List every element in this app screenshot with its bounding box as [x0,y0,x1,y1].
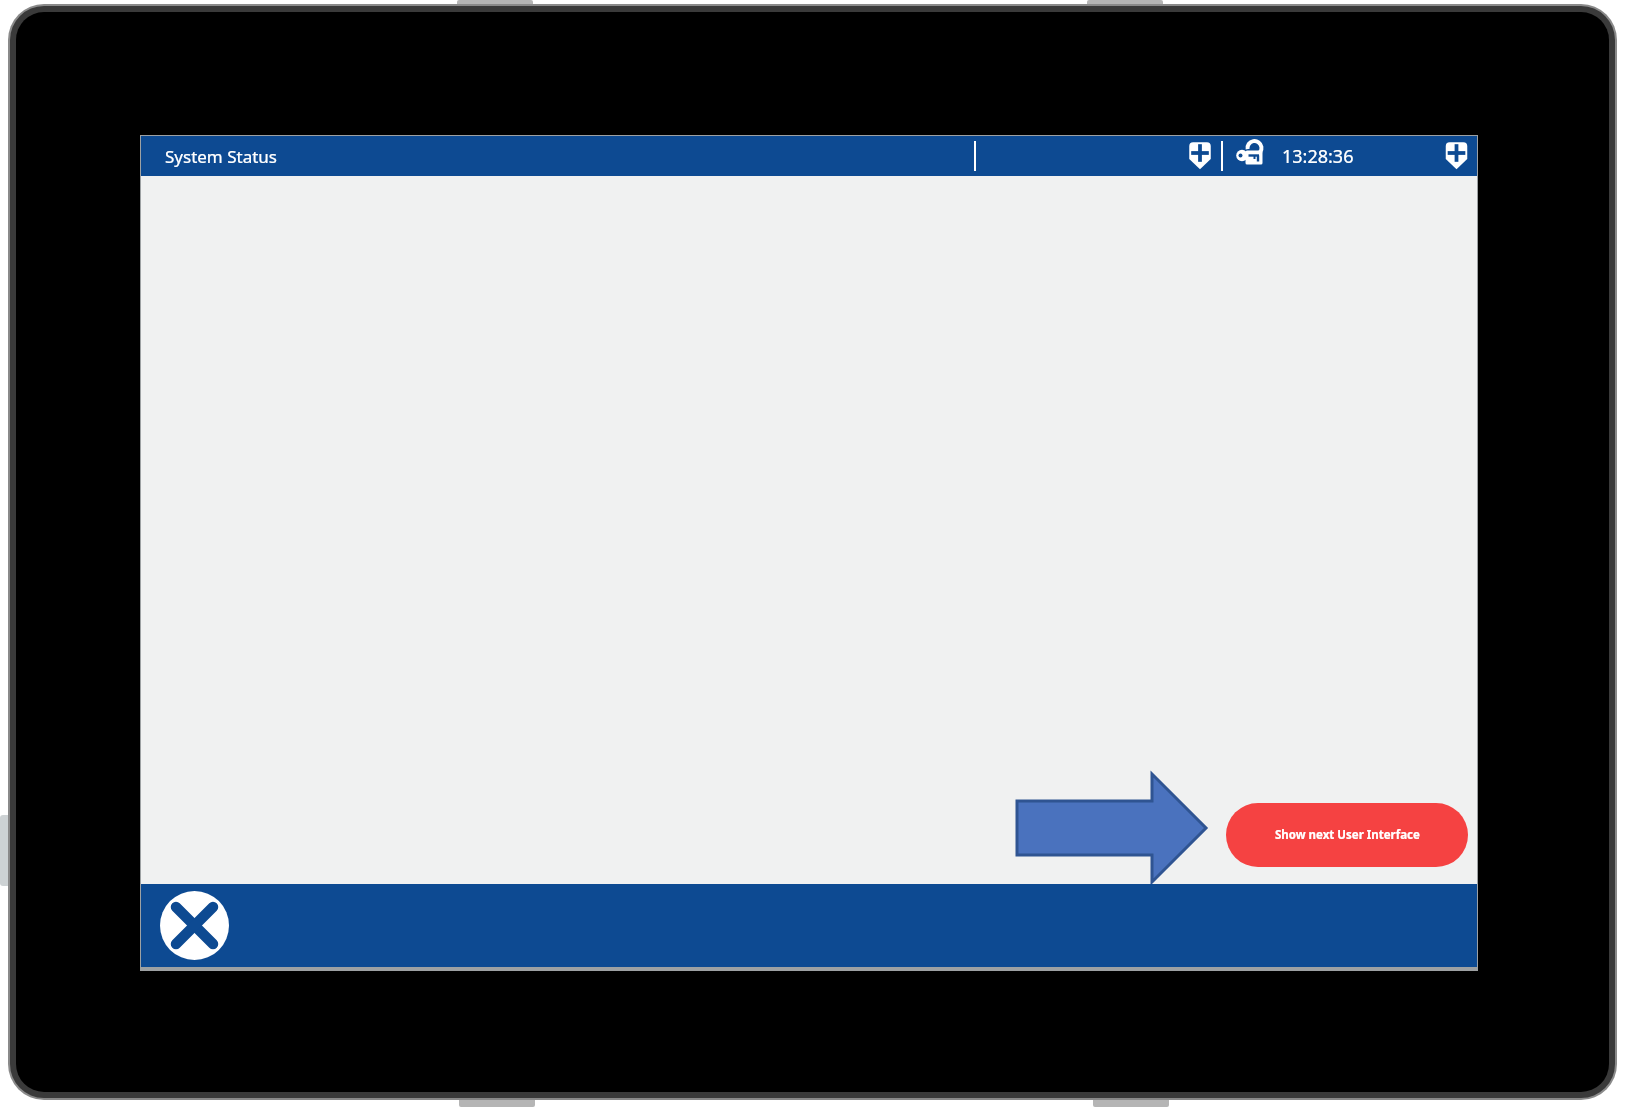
button[interactable]: Show next User Interface [1226,803,1468,867]
staticText: System Status [165,145,277,168]
staticText: Show next User Interface [1275,827,1420,843]
button[interactable] [160,891,229,960]
staticText: 13:28:36 [1282,144,1354,169]
